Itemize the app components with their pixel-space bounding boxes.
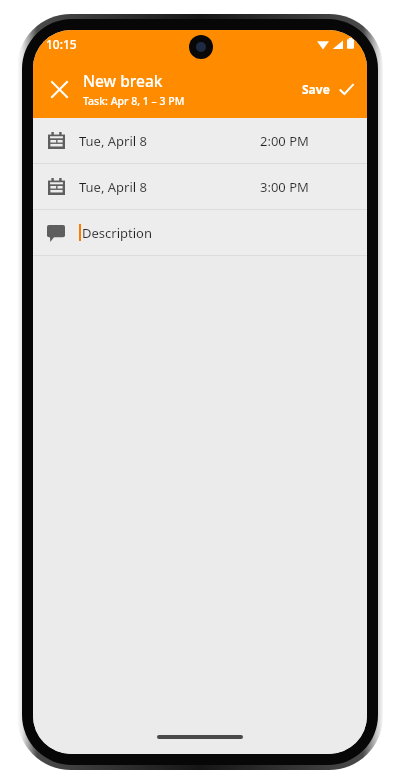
staticText: 3:00 PM [260, 178, 309, 196]
button[interactable]: Description [33, 210, 367, 255]
staticText: Task: Apr 8, 1 – 3 PM [83, 94, 185, 108]
button[interactable]: Tue, April 8 [33, 164, 367, 209]
staticText: 2:00 PM [260, 132, 309, 150]
staticText: Tue, April 8 [79, 178, 148, 196]
button[interactable]: Save [299, 73, 357, 105]
button[interactable]: Close [38, 68, 80, 110]
staticText: 10:15 [46, 36, 77, 52]
staticText: New break [83, 70, 163, 91]
button[interactable]: Tue, April 8 [33, 118, 367, 163]
staticText: Tue, April 8 [79, 132, 148, 150]
staticText: Description [82, 224, 152, 242]
staticText: Save [302, 81, 330, 97]
